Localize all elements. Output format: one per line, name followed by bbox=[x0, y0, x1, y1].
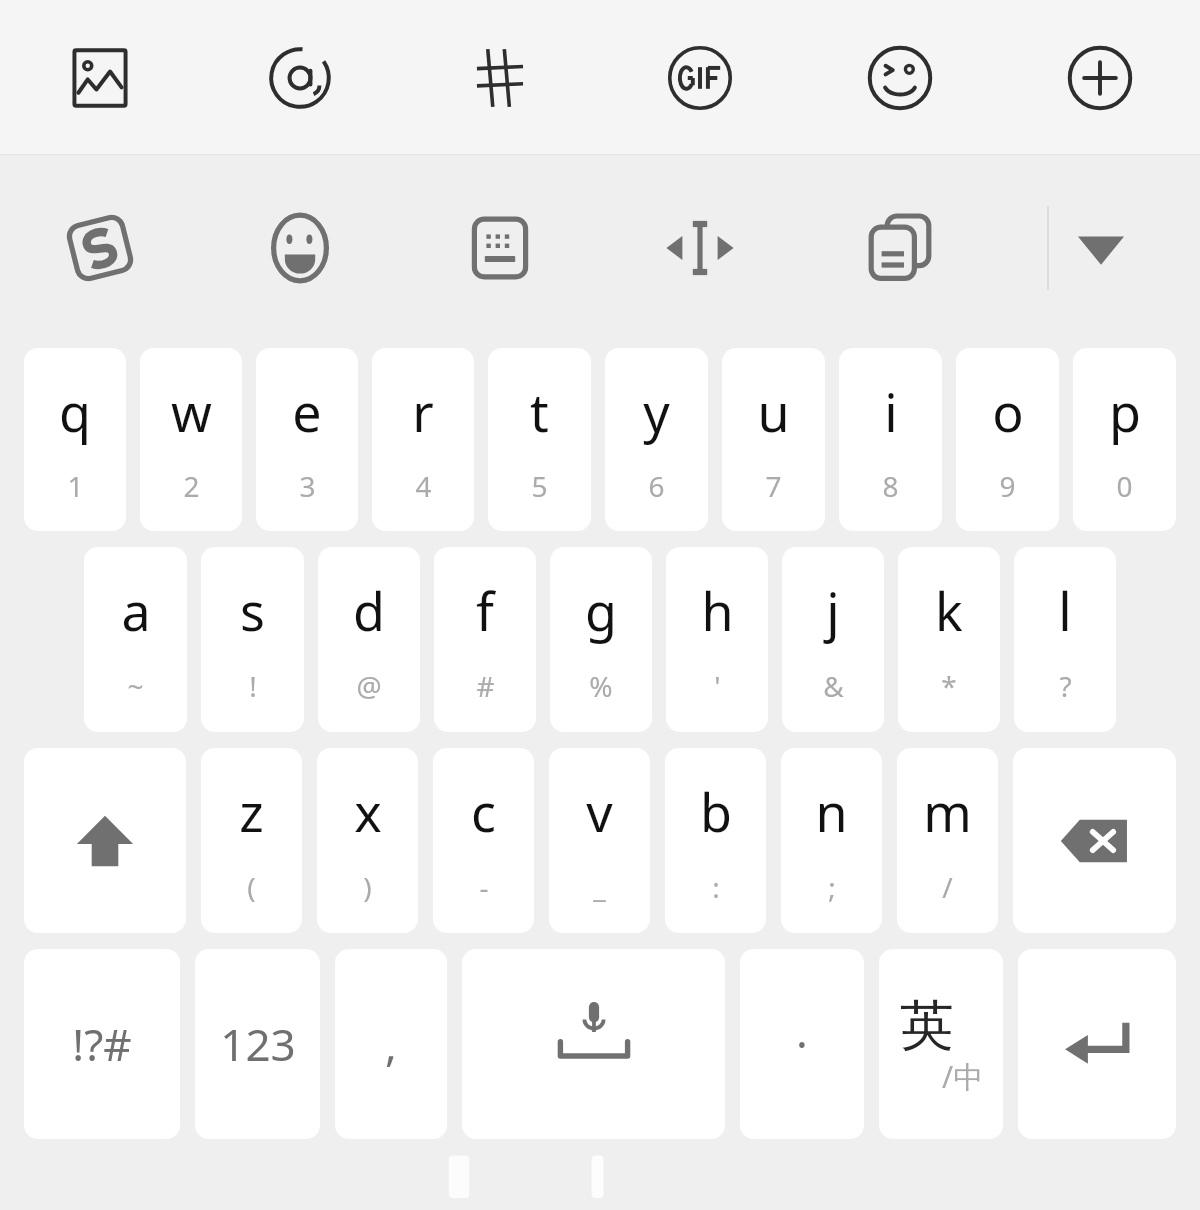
button[interactable]: , bbox=[335, 949, 447, 1139]
staticText: 1 bbox=[67, 467, 84, 505]
button[interactable]: Collapse keyboard bbox=[1049, 155, 1153, 340]
button[interactable]: x bbox=[317, 748, 418, 933]
staticText: f bbox=[476, 575, 494, 646]
staticText: ( bbox=[247, 868, 256, 906]
button[interactable]: Keyboard layout bbox=[400, 155, 600, 340]
staticText: k bbox=[935, 575, 963, 646]
button[interactable]: 英 bbox=[879, 949, 1003, 1139]
button[interactable]: Emoji bbox=[800, 0, 1000, 155]
staticText: d bbox=[353, 575, 385, 646]
staticText: g bbox=[585, 575, 617, 646]
button[interactable]: Insert image bbox=[0, 0, 200, 155]
button[interactable]: a bbox=[84, 547, 187, 732]
button[interactable]: y bbox=[605, 348, 708, 531]
staticText: ~ bbox=[127, 667, 144, 705]
button[interactable]: p bbox=[1073, 348, 1176, 531]
button[interactable]: · bbox=[740, 949, 864, 1139]
button[interactable]: !?# bbox=[24, 949, 180, 1139]
staticText: 8 bbox=[882, 467, 899, 505]
button[interactable]: r bbox=[372, 348, 474, 531]
button[interactable]: More bbox=[1000, 0, 1200, 155]
staticText: 0 bbox=[1116, 467, 1133, 505]
staticText: ' bbox=[714, 667, 721, 705]
button[interactable]: GIF bbox=[600, 0, 800, 155]
button[interactable]: d bbox=[318, 547, 420, 732]
staticText: , bbox=[385, 1014, 397, 1074]
staticText: !?# bbox=[72, 1014, 132, 1074]
staticText: n bbox=[815, 776, 848, 847]
button[interactable]: Hashtag bbox=[400, 0, 600, 155]
staticText: t bbox=[530, 376, 549, 447]
staticText: * bbox=[941, 667, 957, 705]
button[interactable]: f bbox=[434, 547, 536, 732]
staticText: 3 bbox=[299, 467, 316, 505]
staticText: i bbox=[884, 376, 898, 447]
staticText: m bbox=[923, 776, 972, 847]
button[interactable]: u bbox=[722, 348, 825, 531]
staticText: / bbox=[942, 868, 953, 906]
staticText: a bbox=[121, 575, 151, 646]
staticText: 5 bbox=[531, 467, 548, 505]
button[interactable]: Space bbox=[462, 949, 725, 1139]
button[interactable]: Mention bbox=[200, 0, 400, 155]
button[interactable]: b bbox=[665, 748, 766, 933]
button[interactable]: h bbox=[666, 547, 768, 732]
button[interactable]: g bbox=[550, 547, 652, 732]
button[interactable]: 123 bbox=[195, 949, 320, 1139]
button[interactable]: Emoji bbox=[200, 155, 400, 340]
staticText: - bbox=[479, 868, 489, 906]
staticText: 9 bbox=[999, 467, 1016, 505]
staticText: u bbox=[757, 376, 790, 447]
staticText: ; bbox=[828, 868, 836, 906]
button[interactable]: s bbox=[201, 547, 304, 732]
staticText: e bbox=[292, 376, 322, 447]
button[interactable]: w bbox=[140, 348, 242, 531]
staticText: j bbox=[826, 575, 840, 646]
staticText: 英 bbox=[900, 992, 954, 1060]
button[interactable]: Move cursor bbox=[600, 155, 800, 340]
staticText: o bbox=[992, 376, 1024, 447]
staticText: 6 bbox=[648, 467, 665, 505]
button[interactable]: o bbox=[956, 348, 1059, 531]
staticText: y bbox=[643, 376, 670, 447]
button[interactable]: Backspace bbox=[1013, 748, 1176, 933]
staticText: : bbox=[712, 868, 720, 906]
staticText: p bbox=[1109, 376, 1141, 447]
staticText: 123 bbox=[220, 1014, 296, 1074]
staticText: _ bbox=[593, 868, 606, 906]
button[interactable]: k bbox=[898, 547, 1000, 732]
button[interactable]: l bbox=[1014, 547, 1116, 732]
button[interactable]: j bbox=[782, 547, 884, 732]
staticText: & bbox=[823, 667, 844, 705]
staticText: % bbox=[589, 667, 613, 705]
staticText: 7 bbox=[765, 467, 782, 505]
staticText: c bbox=[471, 776, 496, 847]
button[interactable]: v bbox=[549, 748, 650, 933]
staticText: v bbox=[586, 776, 613, 847]
button[interactable]: z bbox=[201, 748, 302, 933]
button[interactable]: m bbox=[897, 748, 998, 933]
button[interactable]: c bbox=[433, 748, 534, 933]
button[interactable]: Clipboard bbox=[800, 155, 1000, 340]
staticText: b bbox=[700, 776, 732, 847]
button[interactable]: e bbox=[256, 348, 358, 531]
button[interactable]: Shift bbox=[24, 748, 186, 933]
staticText: ) bbox=[363, 868, 372, 906]
staticText: · bbox=[796, 1014, 808, 1074]
staticText: /中 bbox=[942, 1056, 984, 1097]
staticText: q bbox=[59, 376, 91, 447]
button[interactable]: q bbox=[24, 348, 126, 531]
button[interactable]: Sogou input bbox=[0, 155, 200, 340]
staticText: ? bbox=[1059, 667, 1072, 705]
staticText: 2 bbox=[183, 467, 200, 505]
staticText: s bbox=[240, 575, 265, 646]
button[interactable]: i bbox=[839, 348, 942, 531]
staticText: h bbox=[701, 575, 734, 646]
staticText: r bbox=[412, 376, 434, 447]
button[interactable]: n bbox=[781, 748, 882, 933]
staticText: z bbox=[239, 776, 264, 847]
staticText: l bbox=[1058, 575, 1072, 646]
button[interactable]: t bbox=[488, 348, 591, 531]
staticText: ! bbox=[249, 667, 257, 705]
button[interactable]: Enter bbox=[1018, 949, 1176, 1139]
